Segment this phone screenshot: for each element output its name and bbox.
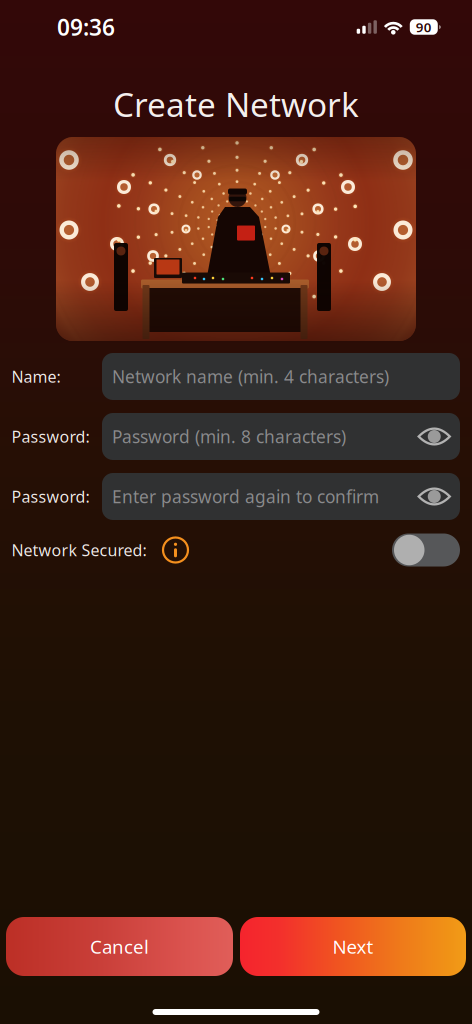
staticText: Name: — [11, 366, 60, 387]
staticText: Network name (min. 4 characters) — [112, 365, 389, 388]
staticText: Cancel — [90, 934, 149, 959]
staticText: Create Network — [113, 82, 359, 126]
staticText: Enter password again to confirm — [112, 485, 379, 508]
button[interactable]: About network security — [146, 536, 189, 564]
staticText: Next — [332, 934, 373, 959]
button[interactable]: Network name (min. 4 characters) — [102, 353, 460, 400]
button[interactable]: Password (min. 8 characters) — [102, 413, 460, 460]
button[interactable]: Enter password again to confirm — [102, 473, 460, 520]
button[interactable]: Next — [240, 917, 466, 976]
button[interactable]: Cancel — [6, 917, 233, 976]
staticText: Network Secured: — [11, 539, 146, 561]
button[interactable]: Network Secured — [392, 533, 460, 566]
staticText: Password (min. 8 characters) — [112, 425, 346, 448]
staticText: Password: — [11, 426, 89, 447]
staticText: Password: — [11, 486, 89, 507]
staticText: 90 — [416, 18, 432, 36]
staticText: 09:36 — [57, 12, 115, 42]
